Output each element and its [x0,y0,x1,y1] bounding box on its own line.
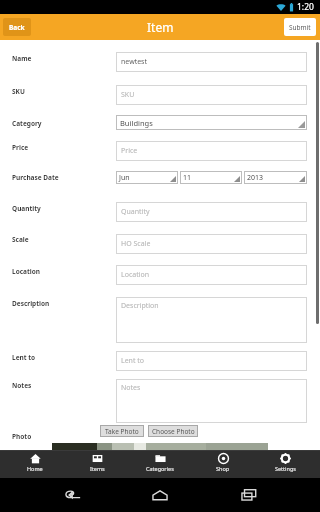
staticText: Category [12,119,42,128]
other: Shop [218,453,229,464]
button[interactable]: Choose Photo [148,425,198,437]
staticText: Description [121,301,159,311]
staticText: newtest [121,57,147,67]
staticText: Take Photo [105,427,139,436]
button[interactable]: Settings [257,453,313,472]
staticText: Scale [12,235,29,244]
staticText: Items [90,465,105,472]
staticText: Name [12,54,32,63]
button[interactable]: Location [116,265,307,285]
staticText: Submit [289,23,311,32]
staticText: Item [147,19,174,35]
button[interactable]: Lent to [116,351,307,371]
other: Categories [155,453,166,464]
staticText: Quantity [121,207,150,217]
other: Items [92,453,103,464]
button[interactable]: HO Scale [116,234,307,254]
button[interactable]: Shop [195,453,251,472]
staticText: 1:20 [297,1,314,13]
staticText: Location [121,270,150,280]
button[interactable]: Submit [284,18,316,36]
button[interactable]: 11 [180,171,242,184]
staticText: SKU [12,87,25,96]
button[interactable]: Back [3,18,31,36]
staticText: Description [12,299,50,308]
button[interactable]: Home [143,478,177,512]
staticText: Purchase Date [12,173,59,182]
button[interactable]: Home [7,453,63,472]
button[interactable]: Jun [116,171,178,184]
other: Home [30,453,41,464]
staticText: Back [9,23,25,32]
staticText: Quantity [12,204,41,213]
staticText: Shop [216,465,230,472]
staticText: Photo [12,432,32,441]
button[interactable]: Items [69,453,125,472]
button[interactable]: Categories [132,453,188,472]
staticText: Price [12,143,29,152]
staticText: Categories [146,465,174,472]
staticText: 11 [183,173,192,183]
button[interactable]: Take Photo [100,425,144,437]
button[interactable]: Price [116,141,307,161]
staticText: Notes [12,381,32,390]
other: Settings [280,453,291,464]
staticText: Lent to [121,356,145,366]
staticText: Jun [119,173,130,183]
button[interactable]: 2013 [244,171,307,184]
staticText: Price [121,146,138,156]
button[interactable]: Buildings [116,115,307,130]
staticText: Home [27,465,43,472]
button[interactable]: Description [116,297,307,343]
staticText: Choose Photo [152,427,195,436]
staticText: Settings [275,465,296,472]
staticText: Notes [121,383,141,393]
staticText: Lent to [12,353,36,362]
button[interactable]: newtest [116,52,307,72]
button[interactable]: Notes [116,379,307,423]
staticText: HO Scale [121,239,151,249]
staticText: Buildings [120,118,153,128]
staticText: Location [12,267,40,276]
button[interactable]: Quantity [116,202,307,222]
button[interactable]: SKU [116,85,307,105]
staticText: SKU [121,90,135,100]
button[interactable]: Recents [232,478,266,512]
button[interactable]: Back [55,478,89,512]
staticText: 2013 [247,173,264,183]
